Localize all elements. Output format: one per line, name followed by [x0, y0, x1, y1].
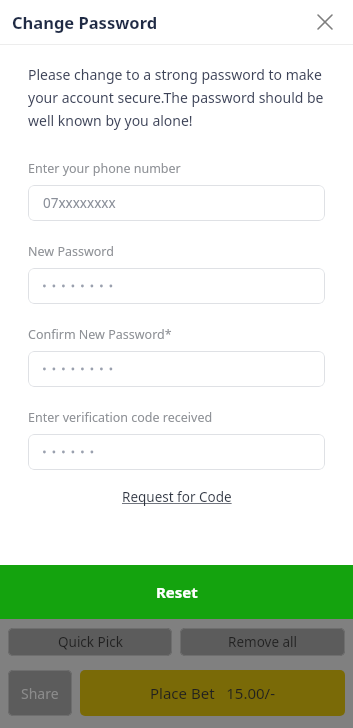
staticText: Enter verification code received [28, 409, 213, 426]
button[interactable]: Share [8, 670, 72, 716]
staticText: Confirm New Password* [28, 326, 172, 343]
button[interactable]: Quick Pick [8, 628, 172, 656]
button[interactable] [28, 268, 325, 304]
button[interactable]: 07xxxxxxxx [28, 185, 325, 221]
button[interactable]: Place Bet 15.00/- [80, 670, 345, 716]
button[interactable] [28, 434, 325, 470]
button[interactable]: Close [311, 8, 339, 36]
staticText: Enter your phone number [28, 160, 181, 177]
button[interactable]: Request for Code [118, 484, 236, 510]
staticText: Please change to a strong password to ma… [28, 65, 325, 130]
staticText: Place Bet 15.00/- [150, 683, 275, 703]
staticText: Quick Pick [58, 633, 123, 651]
staticText: Share [21, 684, 59, 703]
staticText: Reset [156, 582, 198, 602]
button[interactable]: Remove all [180, 628, 345, 656]
staticText: Change Password [12, 11, 158, 33]
staticText: 07xxxxxxxx [43, 194, 116, 212]
staticText: Remove all [228, 633, 298, 651]
staticText: New Password [28, 243, 114, 260]
button[interactable]: Reset [0, 565, 353, 619]
button[interactable] [28, 351, 325, 387]
